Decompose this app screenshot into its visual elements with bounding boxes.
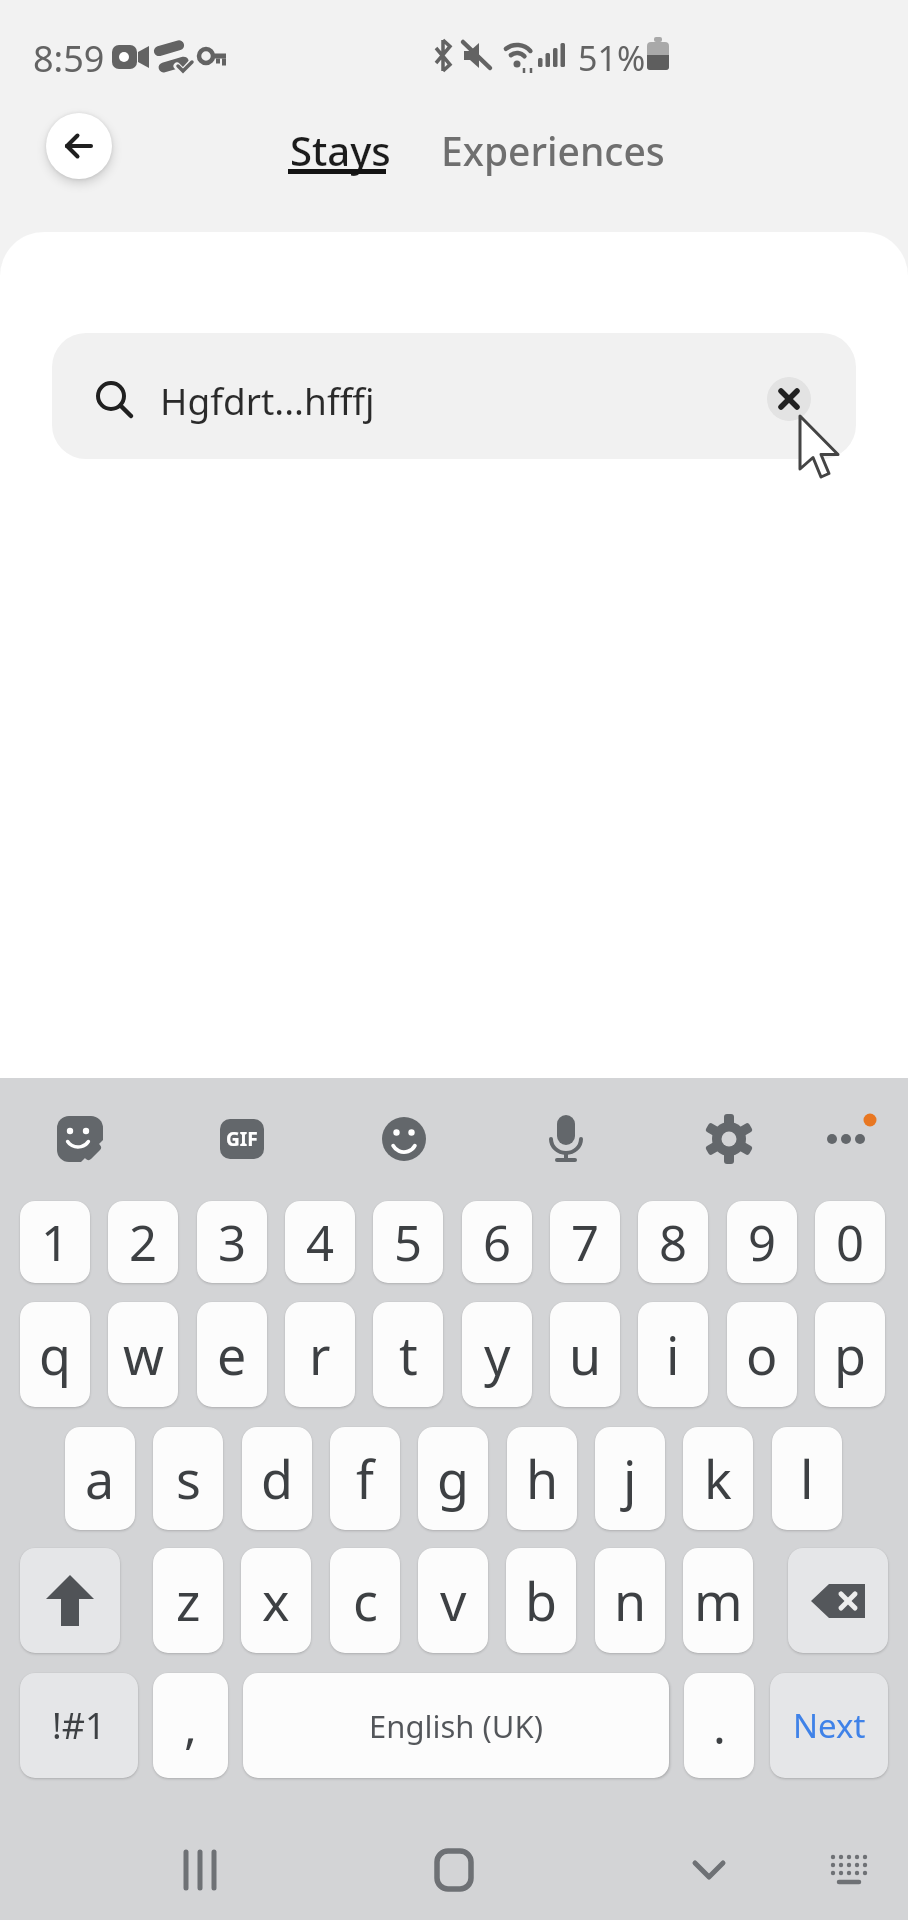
button[interactable]: n [595,1548,665,1653]
button[interactable]: GIF [220,1119,264,1159]
staticText: Stays [290,123,391,177]
button[interactable] [767,377,811,421]
button[interactable] [424,1840,484,1910]
button[interactable]: r [285,1302,355,1407]
staticText: , [184,1693,197,1758]
button[interactable]: j [595,1427,665,1530]
button[interactable] [170,1840,230,1910]
staticText: b [525,1565,557,1636]
button[interactable]: a [65,1427,135,1530]
button[interactable]: Experiences [441,124,665,177]
staticText: 8 [659,1209,688,1276]
button[interactable]: 7 [550,1201,620,1283]
button[interactable]: z [153,1548,223,1653]
staticText: t [399,1319,418,1390]
staticText: Next [793,1703,866,1748]
staticText: Hgfdrt...hfffj [160,375,375,425]
staticText: o [746,1319,778,1390]
staticText: 51% [578,35,646,81]
staticText: Experiences [441,124,665,177]
button[interactable]: l [772,1427,842,1530]
staticText: GIF [226,1126,258,1152]
staticText: r [309,1319,331,1390]
button[interactable]: g [418,1427,488,1530]
button[interactable]: t [373,1302,443,1407]
staticText: !#1 [52,1701,106,1750]
button[interactable]: h [507,1427,577,1530]
staticText: z [176,1565,201,1636]
staticText: s [176,1443,201,1514]
button[interactable]: s [153,1427,223,1530]
button[interactable]: . [684,1673,754,1778]
button[interactable]: u [550,1302,620,1407]
button[interactable]: English (UK) [243,1673,669,1778]
staticText: 6 [483,1209,512,1276]
staticText: l [800,1443,814,1514]
staticText: 9 [748,1209,777,1276]
button[interactable]: o [727,1302,797,1407]
button[interactable]: 2 [108,1201,178,1283]
staticText: i [666,1319,680,1390]
button[interactable]: 3 [197,1201,267,1283]
staticText: 2 [129,1209,158,1276]
button[interactable]: 9 [727,1201,797,1283]
staticText: 3 [218,1209,247,1276]
button[interactable]: i [638,1302,708,1407]
staticText: 7 [571,1209,600,1276]
button[interactable]: 8 [638,1201,708,1283]
button[interactable]: 1 [20,1201,90,1283]
staticText: 4 [306,1209,335,1276]
button[interactable]: 4 [285,1201,355,1283]
button[interactable]: c [330,1548,400,1653]
button[interactable]: m [683,1548,753,1653]
staticText: p [834,1319,866,1390]
button[interactable]: 0 [815,1201,885,1283]
button[interactable]: e [197,1302,267,1407]
staticText: n [614,1565,647,1636]
staticText: w [123,1319,164,1390]
button[interactable]: Next [770,1673,888,1778]
staticText: v [440,1565,467,1636]
button[interactable]: q [20,1302,90,1407]
button[interactable]: x [241,1548,311,1653]
staticText: . [713,1693,726,1758]
button[interactable]: y [462,1302,532,1407]
button[interactable] [788,1548,888,1653]
staticText: q [39,1319,71,1390]
staticText: e [217,1319,247,1390]
staticText: f [356,1443,374,1514]
staticText: a [85,1443,115,1514]
button[interactable]: w [108,1302,178,1407]
button[interactable]: Hgfdrt...hfffj [52,333,856,459]
staticText: m [694,1565,743,1636]
staticText: x [262,1565,290,1636]
button[interactable]: !#1 [20,1673,138,1778]
button[interactable]: d [242,1427,312,1530]
button[interactable] [46,113,112,179]
staticText: g [437,1443,469,1514]
staticText: y [484,1319,511,1390]
staticText: u [569,1319,602,1390]
staticText: j [623,1443,637,1514]
staticText: 5 [394,1209,423,1276]
button[interactable]: , [153,1673,228,1778]
button[interactable]: k [683,1427,753,1530]
staticText: English (UK) [369,1705,543,1747]
button[interactable] [20,1548,120,1653]
staticText: d [261,1443,293,1514]
staticText: 8:59 [33,34,105,83]
button[interactable]: p [815,1302,885,1407]
button[interactable] [819,1840,879,1910]
button[interactable]: v [418,1548,488,1653]
staticText: k [704,1443,732,1514]
button[interactable]: 5 [373,1201,443,1283]
staticText: 1 [41,1209,70,1276]
button[interactable]: Stays [290,123,391,177]
button[interactable]: 6 [462,1201,532,1283]
button[interactable]: f [330,1427,400,1530]
button[interactable]: b [506,1548,576,1653]
staticText: h [526,1443,559,1514]
button[interactable] [679,1840,739,1910]
staticText: 0 [836,1209,865,1276]
staticText: c [353,1565,378,1636]
